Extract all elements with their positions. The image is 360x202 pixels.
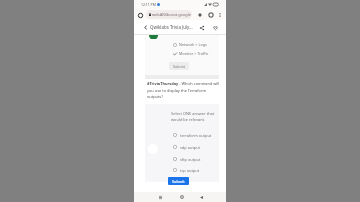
staticText: #TriviaThursday - Which command will you… [147,81,223,99]
button[interactable]: Back [140,22,151,33]
staticText: tcp output [180,168,200,173]
button[interactable]: More options [215,10,225,20]
staticText: Monitor > Traffic [179,51,209,56]
staticText: webAR4boost.google [152,12,191,17]
staticText: sftp output [180,157,201,162]
button[interactable]: Like [210,22,221,33]
button[interactable]: Recent apps [155,192,166,202]
button[interactable]: sdp output [173,143,201,151]
button[interactable]: Switch tabs [206,10,216,20]
button[interactable]: sftp output [173,155,201,163]
staticText: Qwiklabs Trivia July... [150,24,193,30]
button[interactable]: tcp output [173,166,200,174]
button[interactable]: Submit [169,62,189,70]
staticText: sdp output [180,145,201,150]
staticText: terraform output [180,133,212,138]
button[interactable]: terraform output [173,131,212,139]
staticText: 12:11 PM [141,2,156,7]
button[interactable]: Share [196,22,207,33]
staticText: Network > Logs [179,42,207,47]
button[interactable]: Back [196,192,207,202]
staticText: Submit [172,179,185,184]
button[interactable]: webAR4boost.google [146,10,192,19]
button[interactable]: Monitor > Traffic [173,50,209,57]
button[interactable]: Submit [168,177,189,185]
button[interactable]: Network > Logs [173,41,207,48]
staticText: Select ONE answer that would be relevant… [171,111,223,122]
staticText: Submit [173,64,185,69]
button[interactable]: Incognito [135,10,145,20]
button[interactable]: New tab [195,10,205,20]
button[interactable]: Home [176,192,187,202]
